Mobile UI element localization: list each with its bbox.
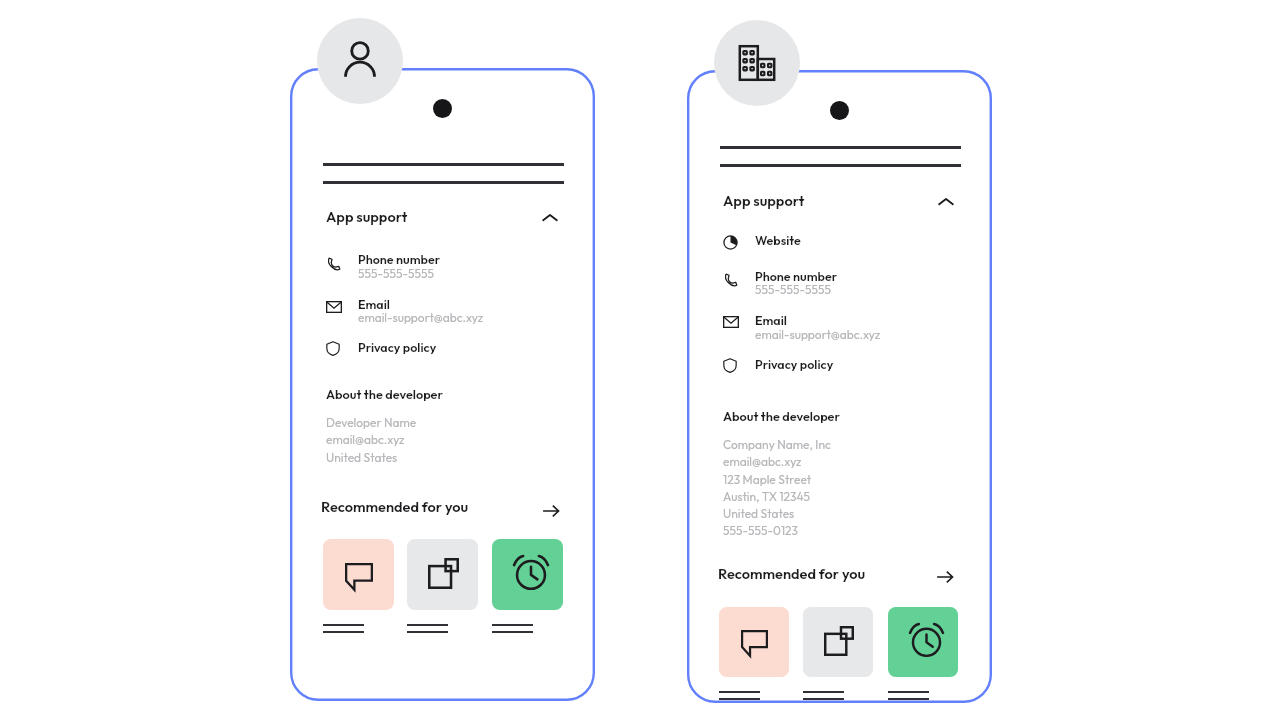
button[interactable]: App support: [723, 186, 961, 212]
button[interactable]: Website: [723, 229, 902, 248]
button[interactable]: Multitasking app: [803, 607, 873, 677]
staticText: email@abc.xyz: [326, 432, 405, 447]
staticText: Recommended for you: [321, 497, 469, 515]
staticText: email-support@abc.xyz: [358, 310, 484, 325]
button[interactable]: Multitasking app: [407, 539, 478, 610]
staticText: Austin, TX 12345: [723, 489, 811, 504]
button[interactable]: Recommended for you: [321, 492, 564, 518]
staticText: 123 Maple Street: [723, 472, 812, 487]
button[interactable]: Phone number: [723, 265, 902, 297]
staticText: United States: [723, 506, 795, 521]
button[interactable]: Messages app: [719, 607, 789, 677]
button[interactable]: Email: [326, 293, 505, 325]
staticText: email-support@abc.xyz: [755, 327, 881, 342]
staticText: Email: [755, 312, 787, 328]
staticText: Website: [755, 232, 801, 248]
button[interactable]: Privacy policy: [723, 353, 902, 372]
staticText: Developer Name: [326, 415, 417, 430]
staticText: About the developer: [723, 408, 840, 424]
staticText: Recommended for you: [718, 564, 866, 582]
other: See all recommendations: [542, 502, 560, 520]
button[interactable]: Recommended for you: [718, 559, 961, 585]
button[interactable]: Phone number: [326, 248, 505, 281]
other: Collapse App support: [937, 193, 955, 211]
button[interactable]: Developer avatar: [317, 18, 403, 104]
button[interactable]: Company logo: [714, 20, 800, 106]
staticText: About the developer: [326, 386, 443, 402]
staticText: United States: [326, 450, 398, 465]
button[interactable]: App support: [326, 202, 564, 228]
other: Collapse App support: [541, 209, 559, 227]
staticText: Privacy policy: [755, 356, 834, 372]
button[interactable]: Alarm app: [888, 607, 958, 677]
staticText: Email: [358, 296, 390, 312]
button[interactable]: Privacy policy: [326, 336, 505, 355]
staticText: Phone number: [755, 268, 838, 284]
staticText: 555-555-5555: [358, 266, 434, 281]
staticText: Phone number: [358, 251, 441, 267]
staticText: Company Name, Inc: [723, 437, 831, 452]
button[interactable]: Email: [723, 309, 902, 342]
staticText: 555-555-5555: [755, 282, 831, 297]
button[interactable]: Messages app: [323, 539, 394, 610]
staticText: App support: [723, 191, 805, 209]
staticText: App support: [326, 207, 408, 225]
staticText: 555-555-0123: [723, 523, 799, 538]
button[interactable]: Alarm app: [492, 539, 563, 610]
other: See all recommendations: [936, 568, 954, 586]
staticText: email@abc.xyz: [723, 454, 802, 469]
staticText: Privacy policy: [358, 339, 437, 355]
